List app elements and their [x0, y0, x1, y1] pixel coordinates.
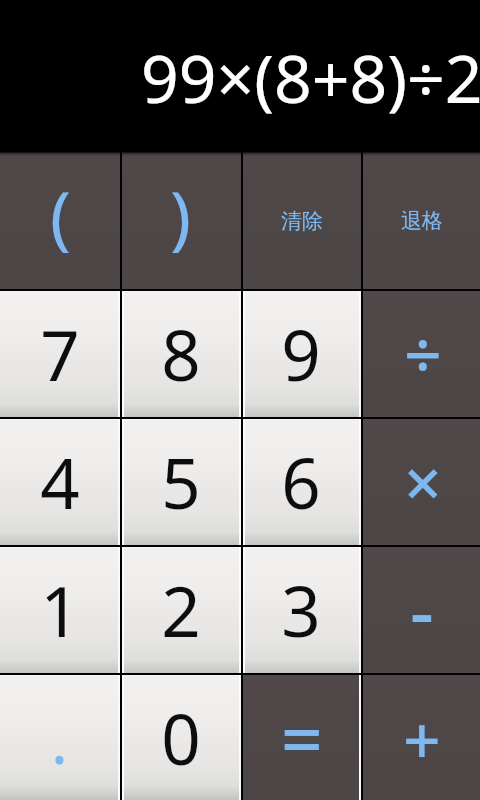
button[interactable]: 3: [241, 546, 361, 674]
button[interactable]: 1: [0, 546, 120, 674]
staticText: 退格: [401, 208, 443, 234]
button[interactable]: Left parenthesis: [0, 152, 120, 290]
staticText: +: [403, 693, 441, 783]
staticText: ×: [404, 436, 442, 526]
button[interactable]: 5: [120, 418, 241, 546]
staticText: =: [281, 688, 323, 787]
staticText: 0: [161, 691, 201, 785]
button[interactable]: 0: [120, 674, 241, 800]
staticText: ): [170, 167, 191, 262]
button[interactable]: 退格: [361, 152, 480, 290]
staticText: 7: [40, 307, 80, 401]
button[interactable]: 6: [241, 418, 361, 546]
staticText: .: [51, 697, 68, 783]
button[interactable]: Plus: [361, 674, 480, 800]
button[interactable]: 8: [120, 290, 241, 418]
staticText: ÷: [404, 308, 442, 398]
button[interactable]: Decimal point: [0, 674, 120, 800]
button[interactable]: Expression display: [0, 0, 480, 152]
button[interactable]: Right parenthesis: [120, 152, 241, 290]
staticText: 2: [161, 563, 201, 657]
button[interactable]: 2: [120, 546, 241, 674]
staticText: 3: [281, 563, 321, 657]
staticText: 9: [281, 307, 321, 401]
staticText: 99×(8+8)÷2: [141, 32, 480, 122]
staticText: 4: [40, 435, 80, 529]
button[interactable]: Minus: [361, 546, 480, 674]
staticText: 清除: [281, 208, 323, 234]
button[interactable]: Equals: [241, 674, 361, 800]
button[interactable]: 9: [241, 290, 361, 418]
staticText: -: [410, 560, 434, 661]
button[interactable]: 清除: [241, 152, 361, 290]
staticText: 5: [161, 435, 201, 529]
staticText: 6: [281, 435, 321, 529]
button[interactable]: 4: [0, 418, 120, 546]
button[interactable]: Divide: [361, 290, 480, 418]
button[interactable]: 7: [0, 290, 120, 418]
button[interactable]: Multiply: [361, 418, 480, 546]
staticText: 8: [161, 307, 201, 401]
staticText: (: [50, 167, 71, 262]
staticText: 1: [40, 563, 80, 657]
